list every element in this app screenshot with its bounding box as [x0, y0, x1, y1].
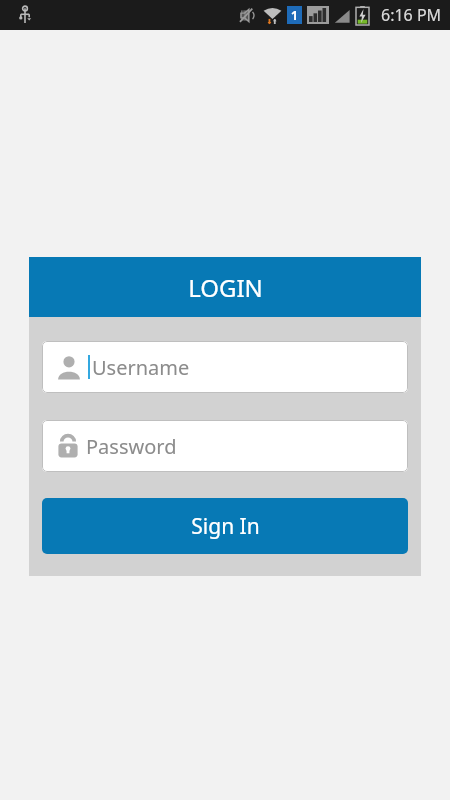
- staticText: 6:16 PM: [381, 4, 442, 26]
- button[interactable]: Password: [42, 420, 408, 472]
- staticText: LOGIN: [188, 271, 263, 304]
- button[interactable]: Username: [42, 341, 408, 393]
- staticText: Sign In: [191, 512, 260, 541]
- staticText: 1: [291, 7, 298, 23]
- button[interactable]: Sign In: [42, 498, 408, 554]
- staticText: Username: [92, 354, 190, 381]
- staticText: Password: [86, 433, 177, 460]
